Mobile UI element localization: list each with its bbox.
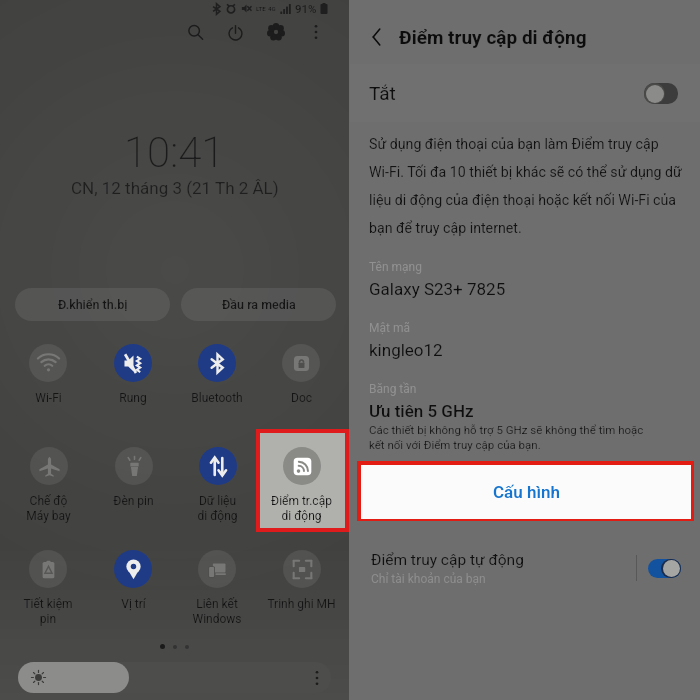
button[interactable]: Đầu ra media (181, 288, 336, 321)
staticText: LTE (256, 5, 266, 12)
button[interactable]: Search (179, 16, 211, 48)
button[interactable]: Doc (259, 344, 343, 430)
staticText: Chế độ Máy bay (26, 494, 71, 523)
staticText: Sử dụng điện thoại của bạn làm Điểm truy… (369, 136, 684, 236)
button[interactable]: Đ.khiển th.bị (15, 288, 170, 321)
staticText: kingleo12 (369, 340, 443, 360)
staticText: 4G (268, 5, 276, 12)
staticText: 10:41 (124, 128, 225, 177)
staticText: Tắt (369, 82, 396, 104)
button[interactable]: Wi-Fi (6, 344, 90, 430)
staticText: Điểm tr.cập di động (271, 494, 332, 523)
button[interactable] (18, 662, 331, 693)
staticText: Tên mạng (369, 260, 422, 274)
staticText: Trinh ghi MH (267, 597, 336, 611)
staticText: Wi-Fi (35, 391, 62, 405)
staticText: Các thiết bị không hỗ trợ 5 GHz sẽ không… (369, 423, 644, 452)
button[interactable]: Dữ liệu di động (175, 447, 259, 533)
button[interactable]: Điểm tr.cập di động (259, 447, 343, 533)
button[interactable]: Settings (260, 16, 292, 48)
staticText: Bluetooth (191, 391, 243, 405)
button[interactable]: Mobile hotspot off (644, 83, 678, 104)
staticText: Băng tần (369, 382, 417, 396)
staticText: Mật mã (369, 321, 410, 335)
button[interactable]: Cấu hình (361, 465, 691, 519)
button[interactable]: Auto hotspot on (648, 559, 681, 578)
button[interactable]: More (309, 666, 325, 690)
button[interactable]: Power off (219, 16, 251, 48)
button[interactable]: Back (361, 22, 391, 52)
staticText: Đèn pin (113, 494, 154, 508)
staticText: Đ.khiển th.bị (58, 297, 128, 312)
staticText: Điểm truy cập di động (399, 26, 587, 48)
staticText: Tiết kiệm pin (23, 597, 73, 626)
button[interactable]: Đèn pin (91, 447, 175, 533)
button[interactable]: Tiết kiệm pin (6, 550, 90, 636)
button[interactable]: Vị trí (91, 550, 175, 636)
staticText: CN, 12 tháng 3 (21 Th 2 ÂL) (71, 178, 279, 198)
staticText: Ưu tiên 5 GHz (369, 401, 474, 421)
button[interactable]: Tắt (350, 64, 700, 122)
staticText: Galaxy S23+ 7825 (369, 279, 506, 299)
button[interactable]: Rung (91, 344, 175, 430)
staticText: Doc (291, 391, 312, 405)
staticText: Vị trí (121, 597, 146, 611)
button[interactable]: Điểm truy cập tự động (350, 539, 700, 597)
staticText: Chỉ tài khoản của bạn (371, 572, 486, 586)
staticText: Liên kết Windows (192, 597, 242, 626)
staticText: Rung (119, 391, 147, 405)
staticText: Cấu hình (493, 482, 560, 502)
staticText: Điểm truy cập tự động (371, 551, 524, 569)
button[interactable]: Bluetooth (175, 344, 259, 430)
button[interactable]: Trinh ghi MH (259, 550, 343, 636)
staticText: Dữ liệu di động (197, 494, 238, 523)
staticText: Đầu ra media (222, 297, 296, 312)
staticText: 91% (295, 2, 317, 15)
button[interactable]: Liên kết Windows (175, 550, 259, 636)
button[interactable]: Chế độ Máy bay (6, 447, 90, 533)
button[interactable]: More options (302, 16, 330, 48)
